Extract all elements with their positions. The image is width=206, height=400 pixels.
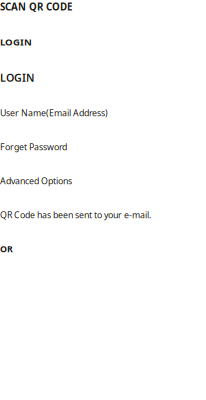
staticText: QR Code has been sent to your e-mail. [0,209,151,221]
staticText: LOGIN [0,70,34,85]
staticText: Forget Password [0,141,67,153]
staticText: SCAN QR CODE [0,0,72,13]
staticText: OR [0,243,13,255]
staticText: LOGIN [0,35,32,48]
staticText: Advanced Options [0,175,72,187]
staticText: User Name(Email Address) [0,107,108,119]
